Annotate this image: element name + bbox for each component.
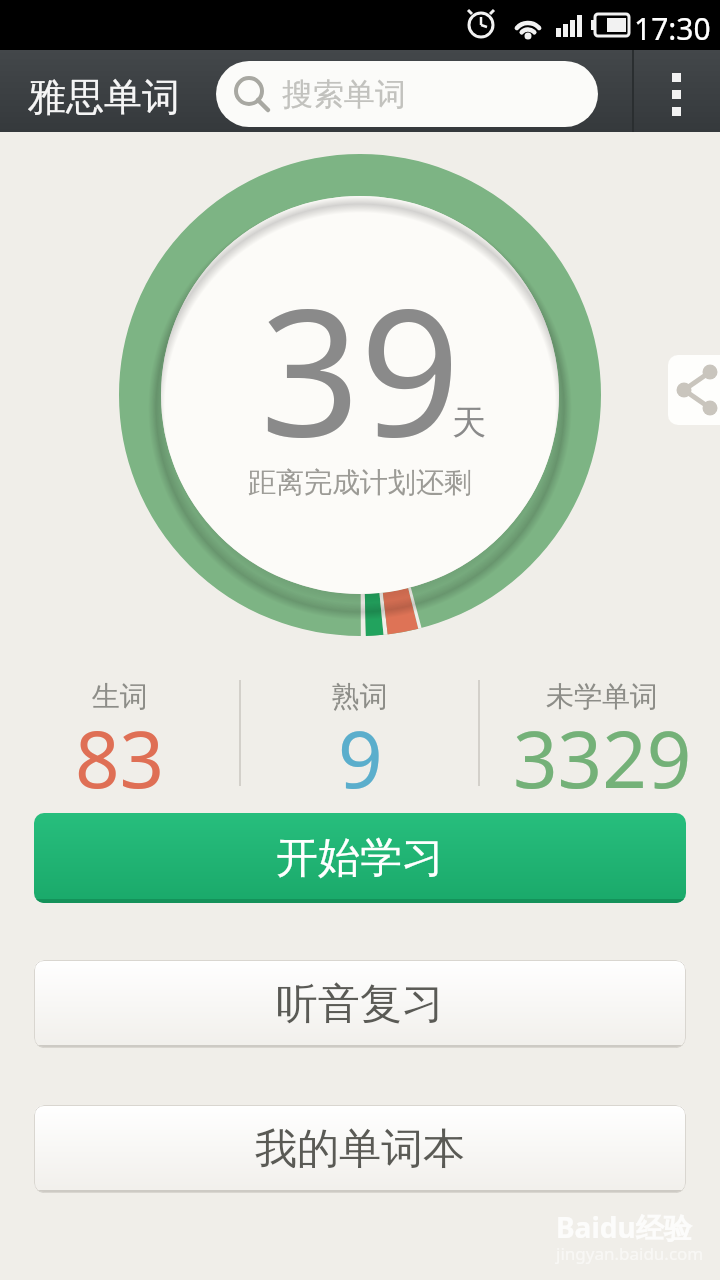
staticText: 我的单词本: [255, 1123, 465, 1176]
staticText: 9: [338, 705, 383, 811]
button[interactable]: [640, 50, 720, 132]
button[interactable]: [668, 355, 720, 425]
staticText: 生词: [92, 679, 148, 714]
staticText: 听音复习: [276, 978, 444, 1031]
staticText: 天: [452, 401, 486, 444]
staticText: 未学单词: [546, 679, 658, 714]
staticText: 雅思单词: [28, 73, 180, 121]
staticText: 距离完成计划还剩: [248, 465, 472, 500]
staticText: Baidu经验: [556, 1208, 692, 1246]
button[interactable]: 听音复习: [34, 960, 686, 1048]
staticText: 熟词: [332, 679, 388, 714]
staticText: 开始学习: [276, 832, 444, 885]
button[interactable]: 开始学习: [34, 813, 686, 903]
staticText: 搜索单词: [282, 75, 406, 114]
staticText: 3329: [513, 705, 692, 811]
staticText: 17:30: [634, 8, 711, 49]
button[interactable]: 我的单词本: [34, 1105, 686, 1193]
staticText: 39: [260, 249, 461, 487]
staticText: jingyan.baidu.com: [556, 1242, 704, 1265]
staticText: 83: [75, 705, 165, 811]
button[interactable]: 搜索单词: [216, 61, 598, 127]
